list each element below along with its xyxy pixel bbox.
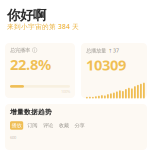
staticText: 来到小宇宙的第 384 天 [7, 22, 79, 31]
staticText: 你好啊 [7, 7, 46, 23]
button[interactable]: 评论 [41, 121, 55, 130]
staticText: 总完播率 ⓘ [10, 47, 37, 54]
staticText: 播放 [12, 122, 22, 129]
button[interactable]: 播放 [10, 121, 23, 130]
button[interactable]: 分享 [73, 121, 86, 130]
button[interactable]: 收藏 [57, 121, 70, 130]
staticText: 总播放量 ↑ 37 [86, 47, 119, 54]
button[interactable]: 订阅 [26, 121, 39, 130]
staticText: 10309 [86, 55, 126, 75]
staticText: 收藏 [59, 122, 69, 129]
staticText: 增量数据趋势 [10, 108, 52, 116]
staticText: 600 [10, 135, 16, 140]
staticText: 分享 [74, 122, 84, 129]
staticText: 100% [61, 89, 70, 94]
staticText: 22.8% [10, 55, 51, 74]
staticText: 评论 [43, 122, 53, 129]
staticText: 订阅 [27, 122, 37, 129]
